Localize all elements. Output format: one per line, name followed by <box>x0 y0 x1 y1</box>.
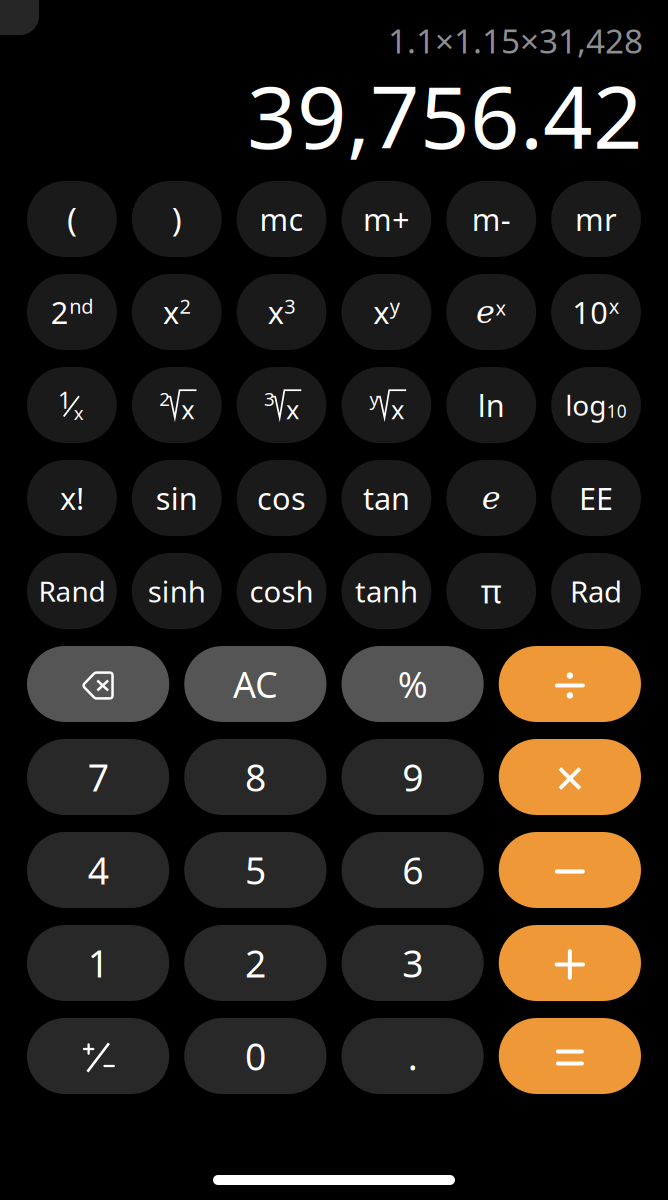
staticText: AC <box>233 660 278 708</box>
staticText: x <box>391 393 404 426</box>
button[interactable]: ln <box>446 367 536 443</box>
staticText: 1 <box>58 383 72 415</box>
button[interactable]: square root <box>132 367 222 443</box>
staticText: % <box>398 660 428 708</box>
staticText: Rad <box>570 571 622 610</box>
staticText: x! <box>60 478 84 518</box>
button[interactable]: ) <box>132 181 222 257</box>
button[interactable]: 9 <box>341 739 484 815</box>
staticText: x <box>373 292 389 332</box>
button[interactable]: 4 <box>27 832 169 908</box>
button[interactable]: 3 <box>341 925 484 1001</box>
staticText: x <box>74 400 84 425</box>
staticText: 3 <box>284 293 295 319</box>
button[interactable]: Delete <box>27 646 169 722</box>
button[interactable]: tanh <box>341 553 431 629</box>
staticText: y <box>369 386 379 411</box>
button[interactable]: Plus minus <box>27 1018 169 1094</box>
button[interactable]: x! <box>27 460 117 536</box>
staticText: 39,756.42 <box>247 58 643 173</box>
button[interactable]: ( <box>27 181 117 257</box>
staticText: tanh <box>355 571 418 610</box>
button[interactable]: tan <box>341 460 431 536</box>
staticText: cos <box>257 478 306 518</box>
staticText: 2 <box>179 293 190 319</box>
button[interactable]: y root of x <box>341 367 431 443</box>
button[interactable]: Multiply <box>499 739 641 815</box>
staticText: e <box>476 293 495 331</box>
staticText: 10 <box>607 400 627 423</box>
staticText: 4 <box>88 845 109 895</box>
staticText: x <box>286 393 299 426</box>
button[interactable]: 1 <box>27 925 169 1001</box>
button[interactable]: Rand <box>27 553 117 629</box>
button[interactable]: x to the y <box>341 274 431 350</box>
staticText: x <box>495 294 506 321</box>
staticText: 7 <box>88 752 109 802</box>
staticText: x <box>609 293 620 319</box>
button[interactable]: e <box>446 460 536 536</box>
staticText: 8 <box>245 752 266 802</box>
button[interactable]: x squared <box>132 274 222 350</box>
staticText: 10 <box>572 292 608 332</box>
staticText: 3 <box>264 386 275 411</box>
staticText: ( <box>67 197 77 241</box>
staticText: 5 <box>245 845 266 895</box>
button[interactable]: Subtract <box>499 832 641 908</box>
staticText: 2 <box>51 292 69 332</box>
staticText: x <box>268 292 284 332</box>
staticText: tan <box>363 478 410 518</box>
staticText: π <box>481 570 502 612</box>
staticText: 2 <box>159 386 170 411</box>
button[interactable]: 7 <box>27 739 169 815</box>
staticText: . <box>408 1031 418 1081</box>
staticText: log <box>565 386 606 424</box>
button[interactable]: EE <box>551 460 641 536</box>
staticText: 1.1×1.15×31,428 <box>388 18 643 63</box>
button[interactable]: cosh <box>237 553 326 629</box>
button[interactable]: log base 10 <box>551 367 641 443</box>
staticText: 1 <box>88 938 109 988</box>
staticText: m+ <box>363 199 410 239</box>
button[interactable]: . <box>341 1018 484 1094</box>
button[interactable]: AC <box>184 646 326 722</box>
button[interactable]: 2 <box>184 925 326 1001</box>
button[interactable]: Add <box>499 925 641 1001</box>
button[interactable]: 2nd <box>27 274 117 350</box>
button[interactable]: Rad <box>551 553 641 629</box>
button[interactable]: sinh <box>132 553 222 629</box>
button[interactable]: Divide <box>499 646 641 722</box>
button[interactable]: % <box>341 646 484 722</box>
button[interactable]: mc <box>237 181 326 257</box>
staticText: m- <box>472 199 511 239</box>
staticText: nd <box>69 293 93 319</box>
staticText: mr <box>575 199 617 239</box>
staticText: ) <box>172 197 182 241</box>
button[interactable]: 8 <box>184 739 326 815</box>
staticText: 6 <box>402 845 423 895</box>
staticText: 2 <box>245 938 266 988</box>
button[interactable]: sin <box>132 460 222 536</box>
button[interactable]: π <box>446 553 536 629</box>
button[interactable]: 0 <box>184 1018 326 1094</box>
button[interactable]: 6 <box>341 832 484 908</box>
staticText: EE <box>579 478 613 518</box>
button[interactable]: mr <box>551 181 641 257</box>
button[interactable]: Equals <box>499 1018 641 1094</box>
staticText: x <box>163 292 179 332</box>
staticText: 9 <box>402 752 423 802</box>
button[interactable]: e to the x <box>446 274 536 350</box>
staticText: 3 <box>402 938 423 988</box>
staticText: ln <box>478 385 505 425</box>
button[interactable]: 5 <box>184 832 326 908</box>
button[interactable]: cos <box>237 460 326 536</box>
button[interactable]: m+ <box>341 181 431 257</box>
button[interactable]: cube root <box>237 367 326 443</box>
button[interactable]: x cubed <box>237 274 326 350</box>
button[interactable]: one over x <box>27 367 117 443</box>
button[interactable]: ten to the x <box>551 274 641 350</box>
staticText: 0 <box>245 1031 266 1081</box>
button[interactable]: m- <box>446 181 536 257</box>
staticText: y <box>390 293 400 319</box>
staticText: mc <box>260 199 304 239</box>
